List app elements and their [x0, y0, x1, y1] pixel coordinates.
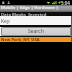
- staticText: Search: [28, 28, 44, 35]
- button[interactable]: Search: [1, 27, 71, 36]
- staticText: Mobile | Edge | Hardware | Software Net: [1, 5, 72, 12]
- staticText: Data Blanks Invested: [1, 12, 47, 16]
- staticText: 5:04: [61, 0, 70, 5]
- staticText: Key:: [1, 18, 11, 25]
- staticText: New York, NY, USA: [1, 37, 40, 42]
